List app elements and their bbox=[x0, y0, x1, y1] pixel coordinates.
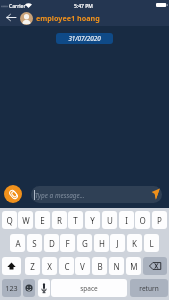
button[interactable]: U bbox=[102, 211, 117, 229]
button[interactable]: Type a message... bbox=[31, 186, 162, 203]
button[interactable]: J bbox=[110, 234, 125, 252]
staticText: J bbox=[116, 238, 119, 249]
staticText: Z bbox=[30, 261, 35, 272]
button[interactable]: H bbox=[94, 234, 109, 252]
staticText: M bbox=[130, 261, 138, 272]
button[interactable]: 31/07/2020 bbox=[56, 33, 113, 44]
button[interactable]: Profile bbox=[20, 12, 33, 25]
staticText: O bbox=[139, 215, 146, 226]
button[interactable]: N bbox=[109, 257, 124, 275]
staticText: N bbox=[113, 261, 120, 272]
button[interactable]: L bbox=[144, 234, 159, 252]
button[interactable]: A bbox=[10, 234, 25, 252]
staticText: space bbox=[80, 284, 98, 293]
staticText: T bbox=[73, 215, 78, 226]
button[interactable]: D bbox=[44, 234, 59, 252]
staticText: Type a message... bbox=[35, 191, 85, 200]
staticText: Q bbox=[6, 215, 13, 226]
button[interactable]: G bbox=[77, 234, 92, 252]
button[interactable]: O bbox=[135, 211, 150, 229]
button[interactable]: return bbox=[130, 279, 168, 297]
button[interactable]: T bbox=[68, 211, 83, 229]
button[interactable]: R bbox=[52, 211, 67, 229]
staticText: X bbox=[47, 261, 52, 272]
staticText: W bbox=[22, 215, 30, 226]
button[interactable]: I bbox=[119, 211, 134, 229]
button[interactable]: Backspace bbox=[143, 257, 167, 275]
button[interactable]: M bbox=[126, 257, 141, 275]
staticText: A bbox=[15, 238, 21, 249]
staticText: S bbox=[32, 238, 37, 249]
button[interactable]: S bbox=[27, 234, 42, 252]
staticText: R bbox=[57, 215, 62, 226]
staticText: K bbox=[132, 238, 137, 249]
button[interactable]: Attach file bbox=[4, 185, 22, 203]
button[interactable]: space bbox=[51, 279, 127, 297]
staticText: G bbox=[82, 238, 88, 249]
staticText: Y bbox=[90, 215, 95, 226]
staticText: B bbox=[97, 261, 103, 272]
button[interactable]: 123 bbox=[2, 279, 21, 297]
staticText: 123 bbox=[5, 283, 18, 293]
button[interactable]: P bbox=[152, 211, 167, 229]
staticText: P bbox=[157, 215, 162, 226]
staticText: H bbox=[99, 238, 105, 249]
button[interactable]: K bbox=[127, 234, 142, 252]
staticText: L bbox=[149, 238, 154, 249]
staticText: C bbox=[64, 261, 70, 272]
staticText: I bbox=[125, 215, 128, 226]
button[interactable]: F bbox=[60, 234, 75, 252]
button[interactable]: V bbox=[75, 257, 90, 275]
staticText: Carrier bbox=[9, 3, 26, 10]
button[interactable]: Back bbox=[3, 9, 19, 25]
button[interactable]: C bbox=[59, 257, 74, 275]
staticText: 31/07/2020 bbox=[68, 34, 101, 43]
button[interactable]: Q bbox=[2, 211, 17, 229]
button[interactable]: Send bbox=[146, 186, 162, 202]
staticText: E bbox=[40, 215, 45, 226]
button[interactable]: Y bbox=[85, 211, 100, 229]
staticText: return bbox=[139, 284, 159, 293]
button[interactable]: B bbox=[92, 257, 107, 275]
button[interactable]: Dictate bbox=[38, 279, 50, 297]
staticText: F bbox=[65, 238, 70, 249]
button[interactable]: Z bbox=[25, 257, 40, 275]
button[interactable]: E bbox=[35, 211, 50, 229]
staticText: 5:47 PM bbox=[74, 3, 93, 10]
button[interactable]: Shift bbox=[2, 257, 21, 275]
staticText: V bbox=[80, 261, 85, 272]
button[interactable]: X bbox=[42, 257, 57, 275]
button[interactable]: W bbox=[18, 211, 33, 229]
staticText: employee1 hoang bbox=[36, 13, 100, 23]
button[interactable]: Emoji bbox=[23, 279, 35, 297]
staticText: D bbox=[49, 238, 55, 249]
staticText: U bbox=[107, 215, 113, 226]
